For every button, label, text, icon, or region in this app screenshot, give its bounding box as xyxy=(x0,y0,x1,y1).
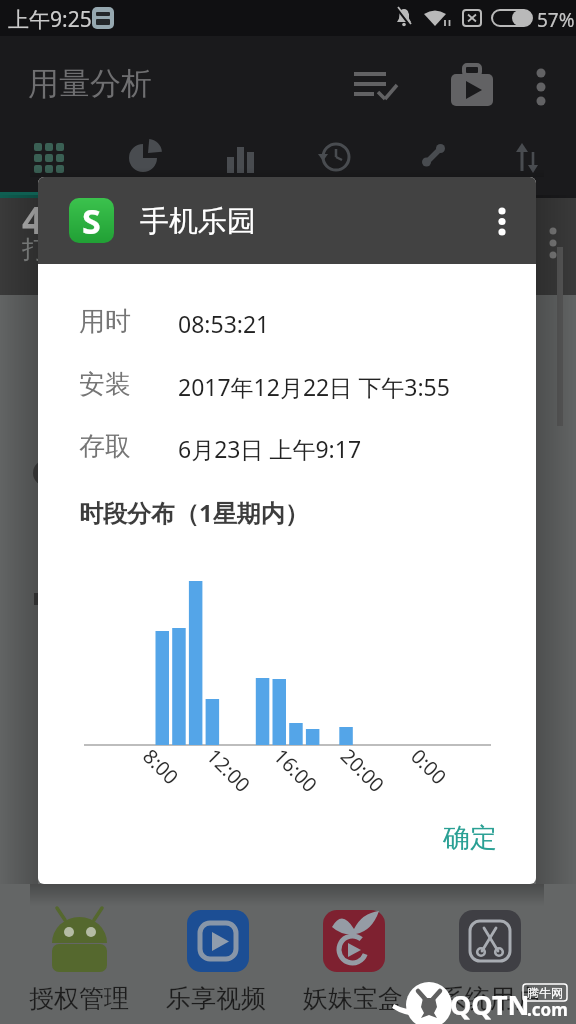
button[interactable] xyxy=(482,187,526,253)
staticText: 4 xyxy=(22,193,44,245)
staticText: 57% xyxy=(537,7,575,33)
button[interactable] xyxy=(96,130,192,198)
button[interactable] xyxy=(480,130,576,198)
staticText: 手机乐园 xyxy=(140,203,256,240)
button[interactable] xyxy=(293,899,413,1021)
staticText: 用时 xyxy=(79,305,131,338)
staticText: .com xyxy=(527,998,568,1021)
staticText: 12:00 xyxy=(201,743,257,798)
button[interactable] xyxy=(192,130,288,198)
staticText: 安装 xyxy=(79,368,131,401)
staticText: 存取 xyxy=(79,430,131,463)
staticText: 08:53:21 xyxy=(178,308,270,339)
staticText: 妖妹宝盒 xyxy=(303,983,403,1014)
button[interactable]: 确定 xyxy=(420,808,520,868)
staticText: 时段分布（1星期内） xyxy=(79,496,309,529)
staticText: 0:00 xyxy=(405,743,453,790)
button[interactable] xyxy=(522,60,562,110)
staticText: 系统用户 xyxy=(440,983,540,1014)
staticText: 乐享视频 xyxy=(166,983,266,1014)
staticText: 打开 xyxy=(22,234,72,265)
staticText: 8:00 xyxy=(137,743,185,790)
button[interactable] xyxy=(340,60,410,110)
button[interactable] xyxy=(440,60,510,110)
staticText: 上午9:25 xyxy=(8,5,92,34)
staticText: S xyxy=(82,198,101,243)
button[interactable] xyxy=(288,130,384,198)
button[interactable] xyxy=(19,899,139,1021)
staticText: 确定 xyxy=(443,821,497,855)
staticText: 20:00 xyxy=(335,743,391,798)
button[interactable] xyxy=(430,899,550,1021)
staticText: 2017年12月22日 下午3:55 xyxy=(178,371,450,402)
staticText: 6月23日 上午9:17 xyxy=(178,433,362,464)
button[interactable] xyxy=(0,130,96,198)
staticText: 授权管理 xyxy=(29,983,129,1014)
staticText: 16:00 xyxy=(268,743,324,798)
staticText: 用量分析 xyxy=(28,64,152,103)
staticText: QQTN xyxy=(450,986,530,1023)
button[interactable] xyxy=(384,130,480,198)
button[interactable] xyxy=(156,899,276,1021)
staticText: 腾牛网 xyxy=(527,985,563,1000)
